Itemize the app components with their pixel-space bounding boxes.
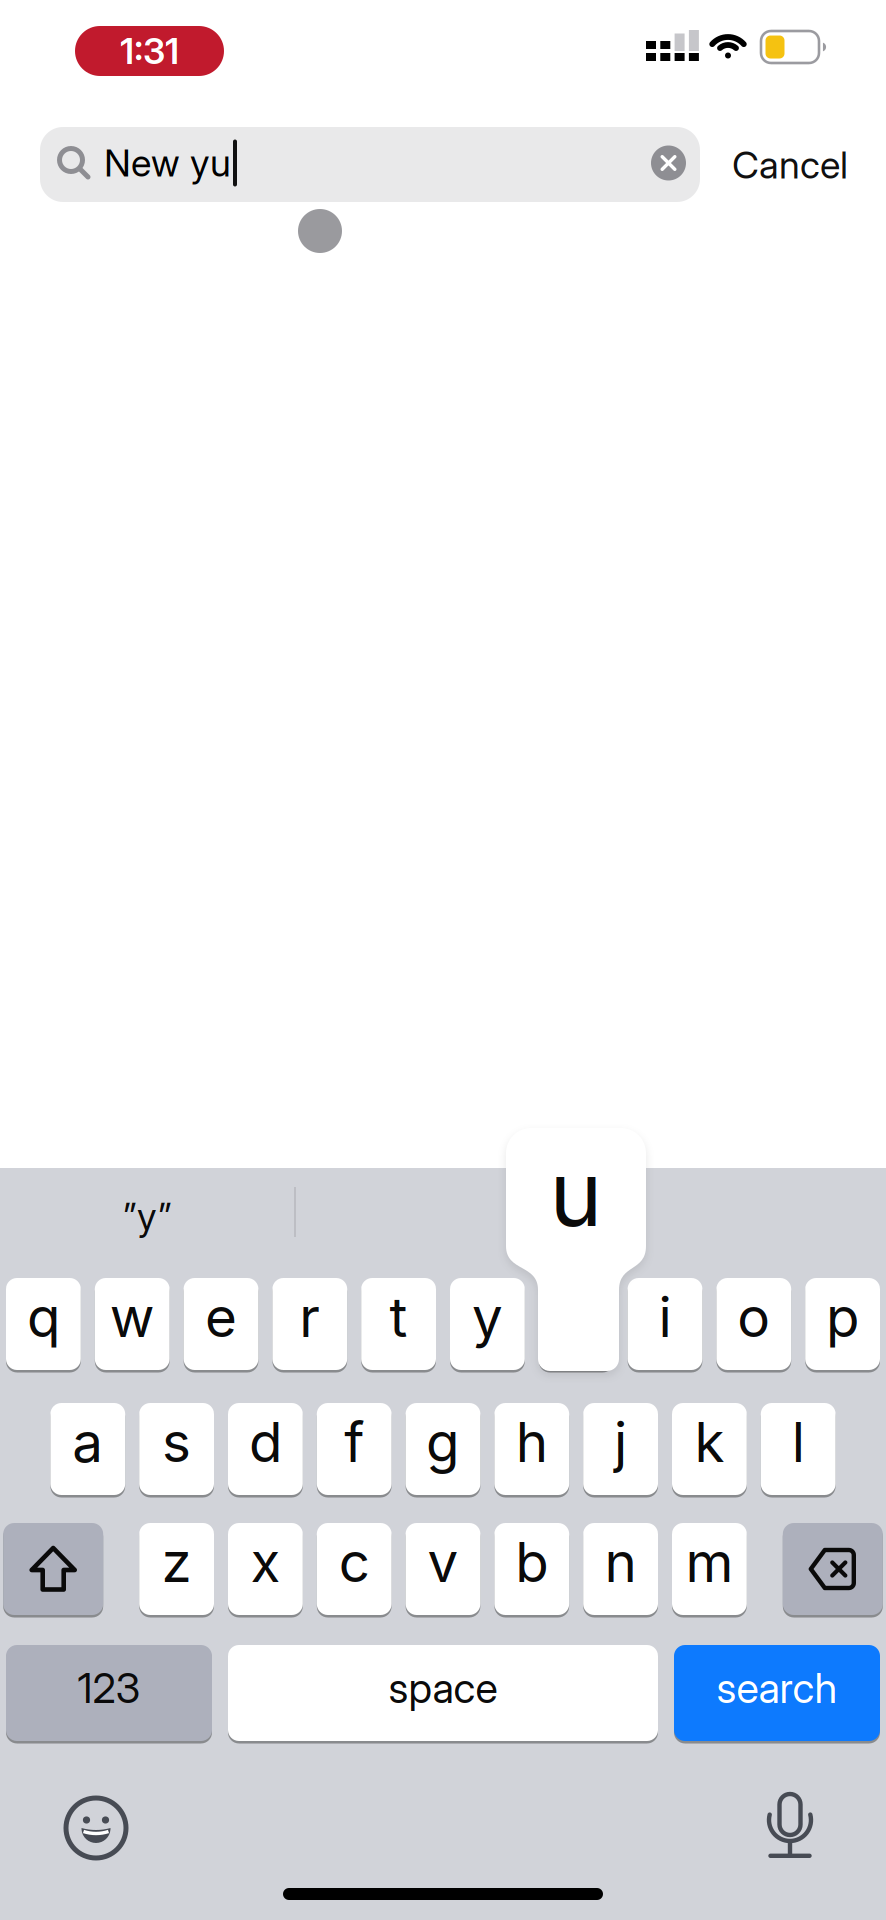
button[interactable]: r [272, 1278, 347, 1370]
button[interactable]: p [805, 1278, 880, 1370]
staticText: n [605, 1530, 637, 1594]
button[interactable]: Clear text [651, 145, 686, 180]
staticText: q [27, 1285, 60, 1349]
staticText: d [249, 1410, 282, 1474]
button[interactable]: b [494, 1523, 569, 1615]
staticText: v [427, 1530, 458, 1594]
staticText: ”y” [123, 1194, 172, 1238]
staticText: c [339, 1530, 370, 1594]
staticText: e [205, 1285, 237, 1349]
button[interactable]: n [583, 1523, 658, 1615]
button[interactable]: y [450, 1278, 525, 1370]
staticText: m [685, 1530, 733, 1594]
button[interactable]: f [317, 1403, 392, 1495]
staticText: x [250, 1530, 280, 1594]
button[interactable]: u [539, 1278, 614, 1370]
staticText: search [716, 1664, 837, 1712]
button[interactable]: v [406, 1523, 480, 1615]
staticText: r [299, 1285, 320, 1349]
staticText: p [826, 1285, 859, 1349]
staticText: y [472, 1285, 503, 1349]
staticText: b [515, 1530, 548, 1594]
button[interactable]: e [184, 1278, 258, 1370]
staticText: f [344, 1410, 364, 1474]
staticText: s [162, 1410, 191, 1474]
staticText: h [516, 1410, 548, 1474]
button[interactable]: x [228, 1523, 303, 1615]
button[interactable]: Search field [0, 0, 660, 75]
staticText: l [792, 1410, 805, 1474]
button[interactable]: search [674, 1645, 880, 1741]
button[interactable]: g [406, 1403, 480, 1495]
button[interactable]: m [672, 1523, 747, 1615]
staticText: z [162, 1530, 192, 1594]
staticText: a [72, 1410, 103, 1474]
button[interactable]: d [228, 1403, 303, 1495]
button[interactable]: i [628, 1278, 702, 1370]
staticText: 123 [77, 1664, 140, 1712]
staticText: k [694, 1410, 724, 1474]
button[interactable]: h [494, 1403, 569, 1495]
button[interactable]: z [139, 1523, 214, 1615]
button[interactable]: space [228, 1645, 658, 1741]
staticText: New yu [104, 141, 231, 185]
button[interactable]: Shift [3, 1523, 103, 1615]
button[interactable]: Delete [783, 1523, 883, 1615]
button[interactable]: ”y” [0, 1168, 295, 1241]
staticText: t [390, 1285, 408, 1349]
button[interactable]: l [761, 1403, 836, 1495]
staticText: j [614, 1410, 627, 1474]
button[interactable]: c [317, 1523, 392, 1615]
staticText: space [388, 1664, 497, 1712]
button[interactable]: t [361, 1278, 436, 1370]
staticText: i [658, 1285, 671, 1349]
button[interactable]: q [6, 1278, 81, 1370]
button[interactable]: a [50, 1403, 125, 1495]
button[interactable]: Cancel [0, 0, 160, 48]
button[interactable]: k [672, 1403, 747, 1495]
button[interactable]: s [139, 1403, 214, 1495]
staticText: Cancel [732, 143, 848, 187]
button[interactable]: w [95, 1278, 170, 1370]
button[interactable]: 123 [6, 1645, 212, 1741]
button[interactable]: j [583, 1403, 658, 1495]
staticText: g [426, 1410, 460, 1474]
button[interactable]: o [716, 1278, 791, 1370]
staticText: o [737, 1285, 770, 1349]
staticText: 1:31 [120, 30, 179, 72]
staticText: u [549, 1141, 602, 1246]
staticText: w [110, 1285, 155, 1349]
